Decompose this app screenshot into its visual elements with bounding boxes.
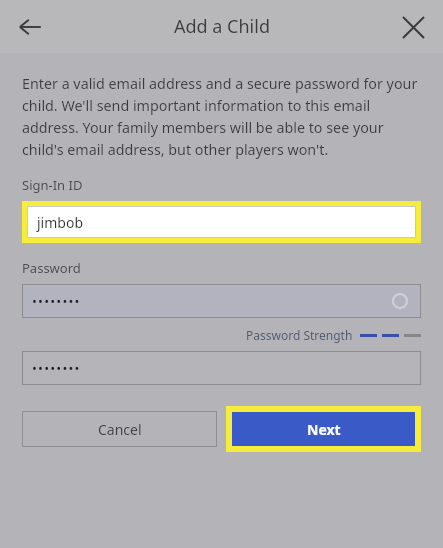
button[interactable]: Cancel	[22, 411, 217, 447]
button[interactable]: jimbob	[27, 206, 416, 238]
button[interactable]: ••••••••	[22, 284, 421, 318]
button[interactable]: Next	[232, 412, 415, 446]
staticText: Add a Child	[174, 14, 270, 39]
staticText: Password	[22, 259, 81, 277]
staticText: ••••••••	[32, 359, 81, 377]
button[interactable]: ••••••••	[22, 351, 421, 385]
staticText: Cancel	[98, 420, 142, 439]
staticText: ••••••••	[32, 292, 81, 310]
button[interactable]: Back	[8, 5, 52, 49]
staticText: Sign-In ID	[22, 176, 83, 194]
staticText: Next	[307, 420, 341, 439]
button[interactable]: Show password	[387, 288, 413, 314]
staticText: jimbob	[37, 213, 84, 232]
staticText: Password Strength	[246, 327, 353, 343]
button[interactable]: Close	[391, 5, 435, 49]
staticText: Enter a valid email address and a secure…	[22, 74, 421, 159]
